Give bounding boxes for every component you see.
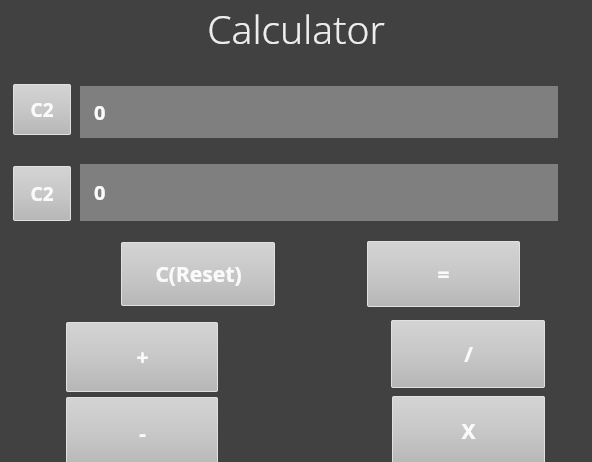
staticText: X [461, 417, 476, 446]
staticText: 0 [94, 99, 106, 126]
button[interactable]: C2 [13, 166, 71, 221]
staticText: C2 [30, 97, 54, 123]
staticText: + [136, 343, 149, 372]
staticText: C2 [30, 181, 54, 207]
button[interactable]: C2 [13, 84, 71, 135]
staticText: / [464, 340, 473, 369]
button[interactable]: 0 [80, 164, 558, 221]
button[interactable]: C(Reset) [121, 242, 275, 306]
button[interactable]: 0 [80, 86, 558, 138]
button[interactable]: Multiply [392, 396, 545, 462]
button[interactable]: Divide [391, 320, 545, 388]
staticText: C(Reset) [155, 260, 242, 289]
button[interactable]: Equals [367, 241, 520, 307]
button[interactable]: Plus [66, 322, 218, 392]
staticText: 0 [94, 179, 106, 206]
staticText: = [437, 260, 450, 289]
staticText: - [139, 419, 146, 448]
button[interactable]: Minus [66, 397, 218, 462]
staticText: Calculator [0, 2, 592, 55]
